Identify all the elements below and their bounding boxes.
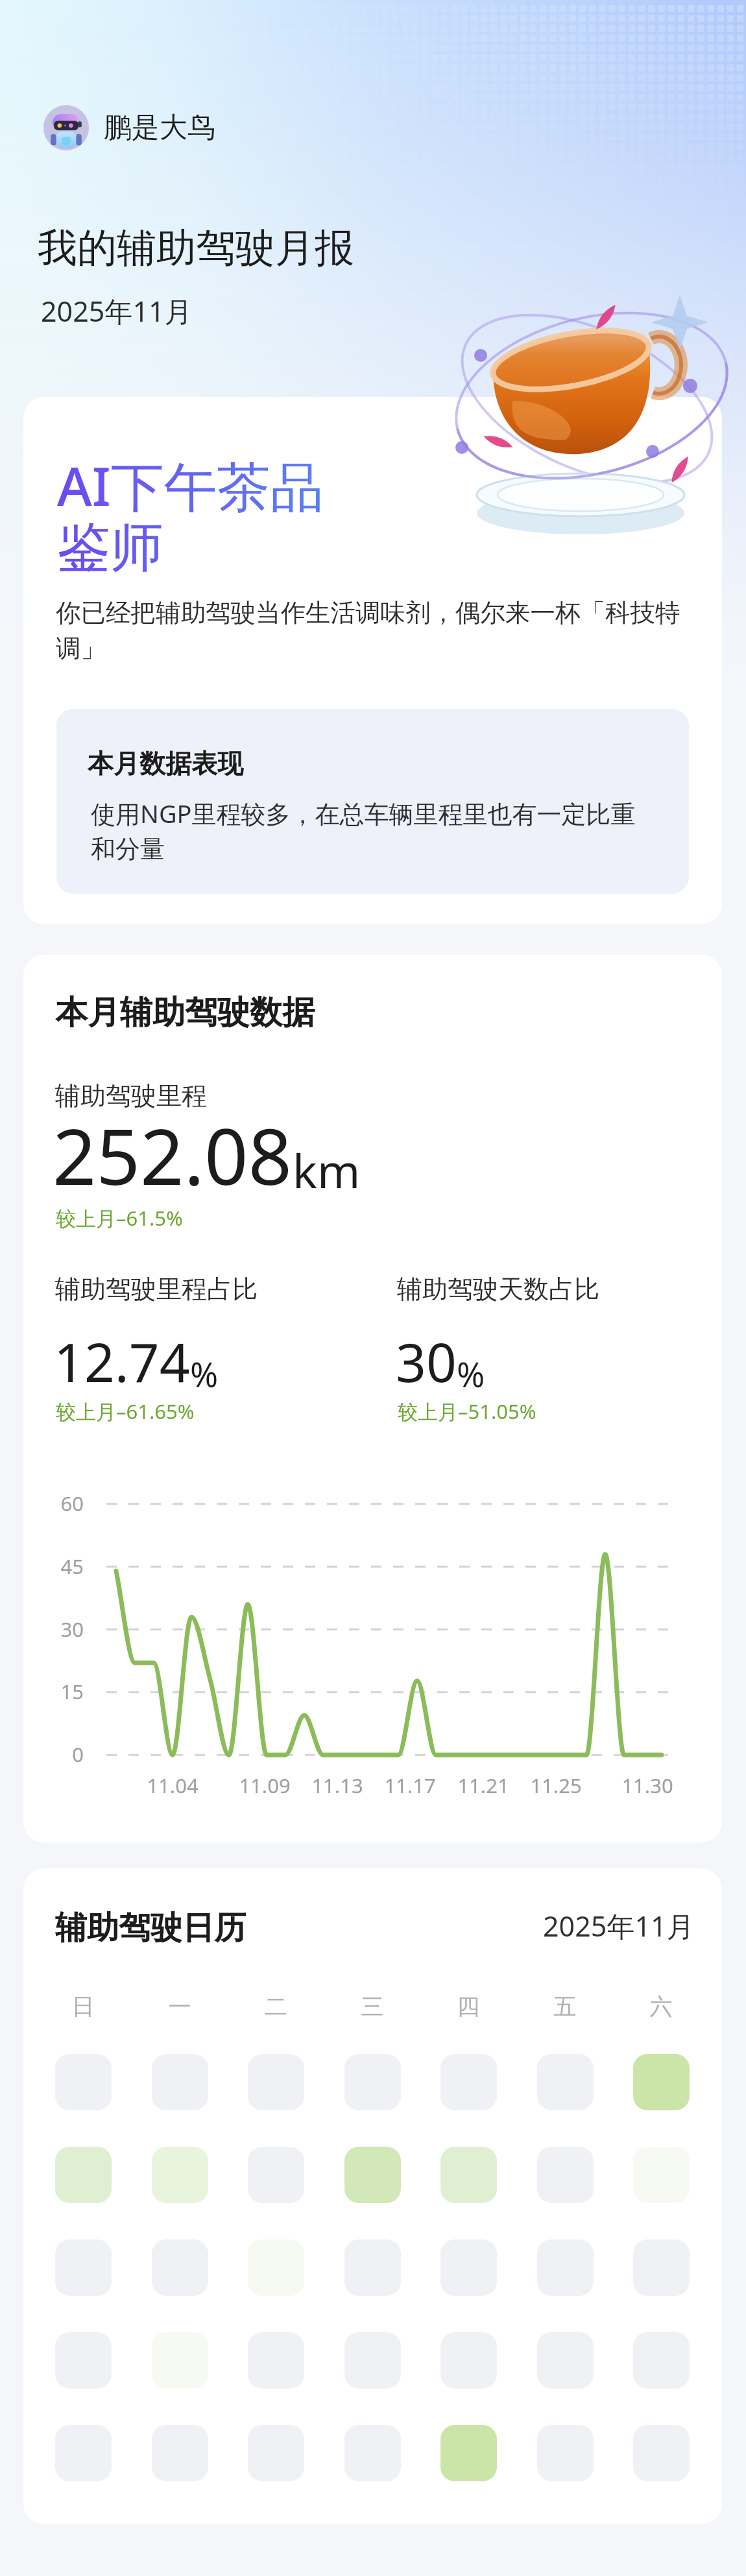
staticText: 2025年11月 xyxy=(543,1907,695,1945)
button[interactable] xyxy=(152,2147,208,2203)
staticText: 辅助驾驶里程 xyxy=(55,1080,207,1112)
button[interactable] xyxy=(633,2332,690,2389)
button[interactable] xyxy=(152,2054,208,2110)
staticText: 六 xyxy=(620,1992,702,2021)
staticText: 二 xyxy=(235,1992,317,2021)
staticText: 本月辅助驾驶数据 xyxy=(55,992,315,1033)
button[interactable] xyxy=(344,2425,401,2481)
button[interactable] xyxy=(248,2054,304,2110)
staticText: 11.04 xyxy=(134,1772,211,1799)
staticText: 辅助驾驶日历 xyxy=(55,1908,246,1948)
staticText: 辅助驾驶天数占比 xyxy=(397,1273,599,1305)
button[interactable] xyxy=(440,2054,497,2110)
staticText: AI下午茶品 鉴师 xyxy=(57,449,324,581)
button[interactable] xyxy=(537,2239,594,2296)
staticText: 鹏是大鸟 xyxy=(104,110,215,145)
button[interactable] xyxy=(248,2332,304,2389)
staticText: 使用NGP里程较多，在总车辆里程里也有一定比重和分量 xyxy=(91,796,649,865)
staticText: 三 xyxy=(331,1992,413,2021)
button[interactable] xyxy=(440,2239,497,2296)
button[interactable] xyxy=(55,2054,112,2110)
staticText: 11.09 xyxy=(226,1772,304,1799)
staticText: 252.08 xyxy=(53,1103,293,1208)
staticText: 四 xyxy=(427,1992,509,2021)
staticText: 本月数据表现 xyxy=(88,747,243,780)
button[interactable] xyxy=(537,2332,594,2389)
button[interactable] xyxy=(344,2054,401,2110)
button[interactable] xyxy=(440,2425,497,2481)
staticText: 2025年11月 xyxy=(41,292,193,330)
button[interactable] xyxy=(152,2239,208,2296)
button[interactable] xyxy=(537,2425,594,2481)
button[interactable] xyxy=(537,2054,594,2110)
staticText: 你已经把辅助驾驶当作生活调味剂，偶尔来一杯「科技特调」 xyxy=(56,597,692,665)
staticText: 0 xyxy=(25,1741,84,1768)
button[interactable] xyxy=(344,2239,401,2296)
staticText: 45 xyxy=(25,1553,84,1580)
staticText: 较上月–61.65% xyxy=(56,1398,195,1425)
staticText: 11.21 xyxy=(444,1772,522,1799)
button[interactable] xyxy=(55,2425,112,2481)
button[interactable] xyxy=(248,2147,304,2203)
staticText: 12.74 xyxy=(54,1325,190,1398)
button[interactable] xyxy=(55,2239,112,2296)
button[interactable] xyxy=(537,2147,594,2203)
button[interactable]: 鹏是大鸟 xyxy=(43,105,215,150)
staticText: 一 xyxy=(139,1992,221,2021)
button[interactable] xyxy=(55,2147,112,2203)
button[interactable] xyxy=(633,2239,690,2296)
staticText: 11.25 xyxy=(517,1772,595,1799)
staticText: 较上月–51.05% xyxy=(398,1398,536,1425)
staticText: 15 xyxy=(25,1678,84,1705)
staticText: 11.30 xyxy=(608,1772,686,1799)
staticText: 11.13 xyxy=(298,1772,376,1799)
staticText: 30 xyxy=(25,1616,84,1643)
staticText: 较上月–61.5% xyxy=(56,1204,183,1232)
staticText: % xyxy=(457,1351,485,1397)
button[interactable] xyxy=(440,2332,497,2389)
button[interactable] xyxy=(248,2425,304,2481)
button[interactable] xyxy=(633,2425,690,2481)
button[interactable] xyxy=(152,2425,208,2481)
button[interactable] xyxy=(440,2147,497,2203)
staticText: 11.17 xyxy=(371,1772,449,1799)
button[interactable] xyxy=(633,2054,690,2110)
staticText: 辅助驾驶里程占比 xyxy=(55,1273,258,1305)
staticText: km xyxy=(293,1139,361,1202)
staticText: 30 xyxy=(396,1325,457,1398)
staticText: % xyxy=(190,1351,219,1397)
staticText: 我的辅助驾驶月报 xyxy=(38,223,354,273)
staticText: 日 xyxy=(42,1992,124,2021)
staticText: 五 xyxy=(524,1992,606,2021)
button[interactable] xyxy=(344,2147,401,2203)
staticText: 60 xyxy=(25,1490,84,1517)
button[interactable] xyxy=(344,2332,401,2389)
button[interactable] xyxy=(55,2332,112,2389)
